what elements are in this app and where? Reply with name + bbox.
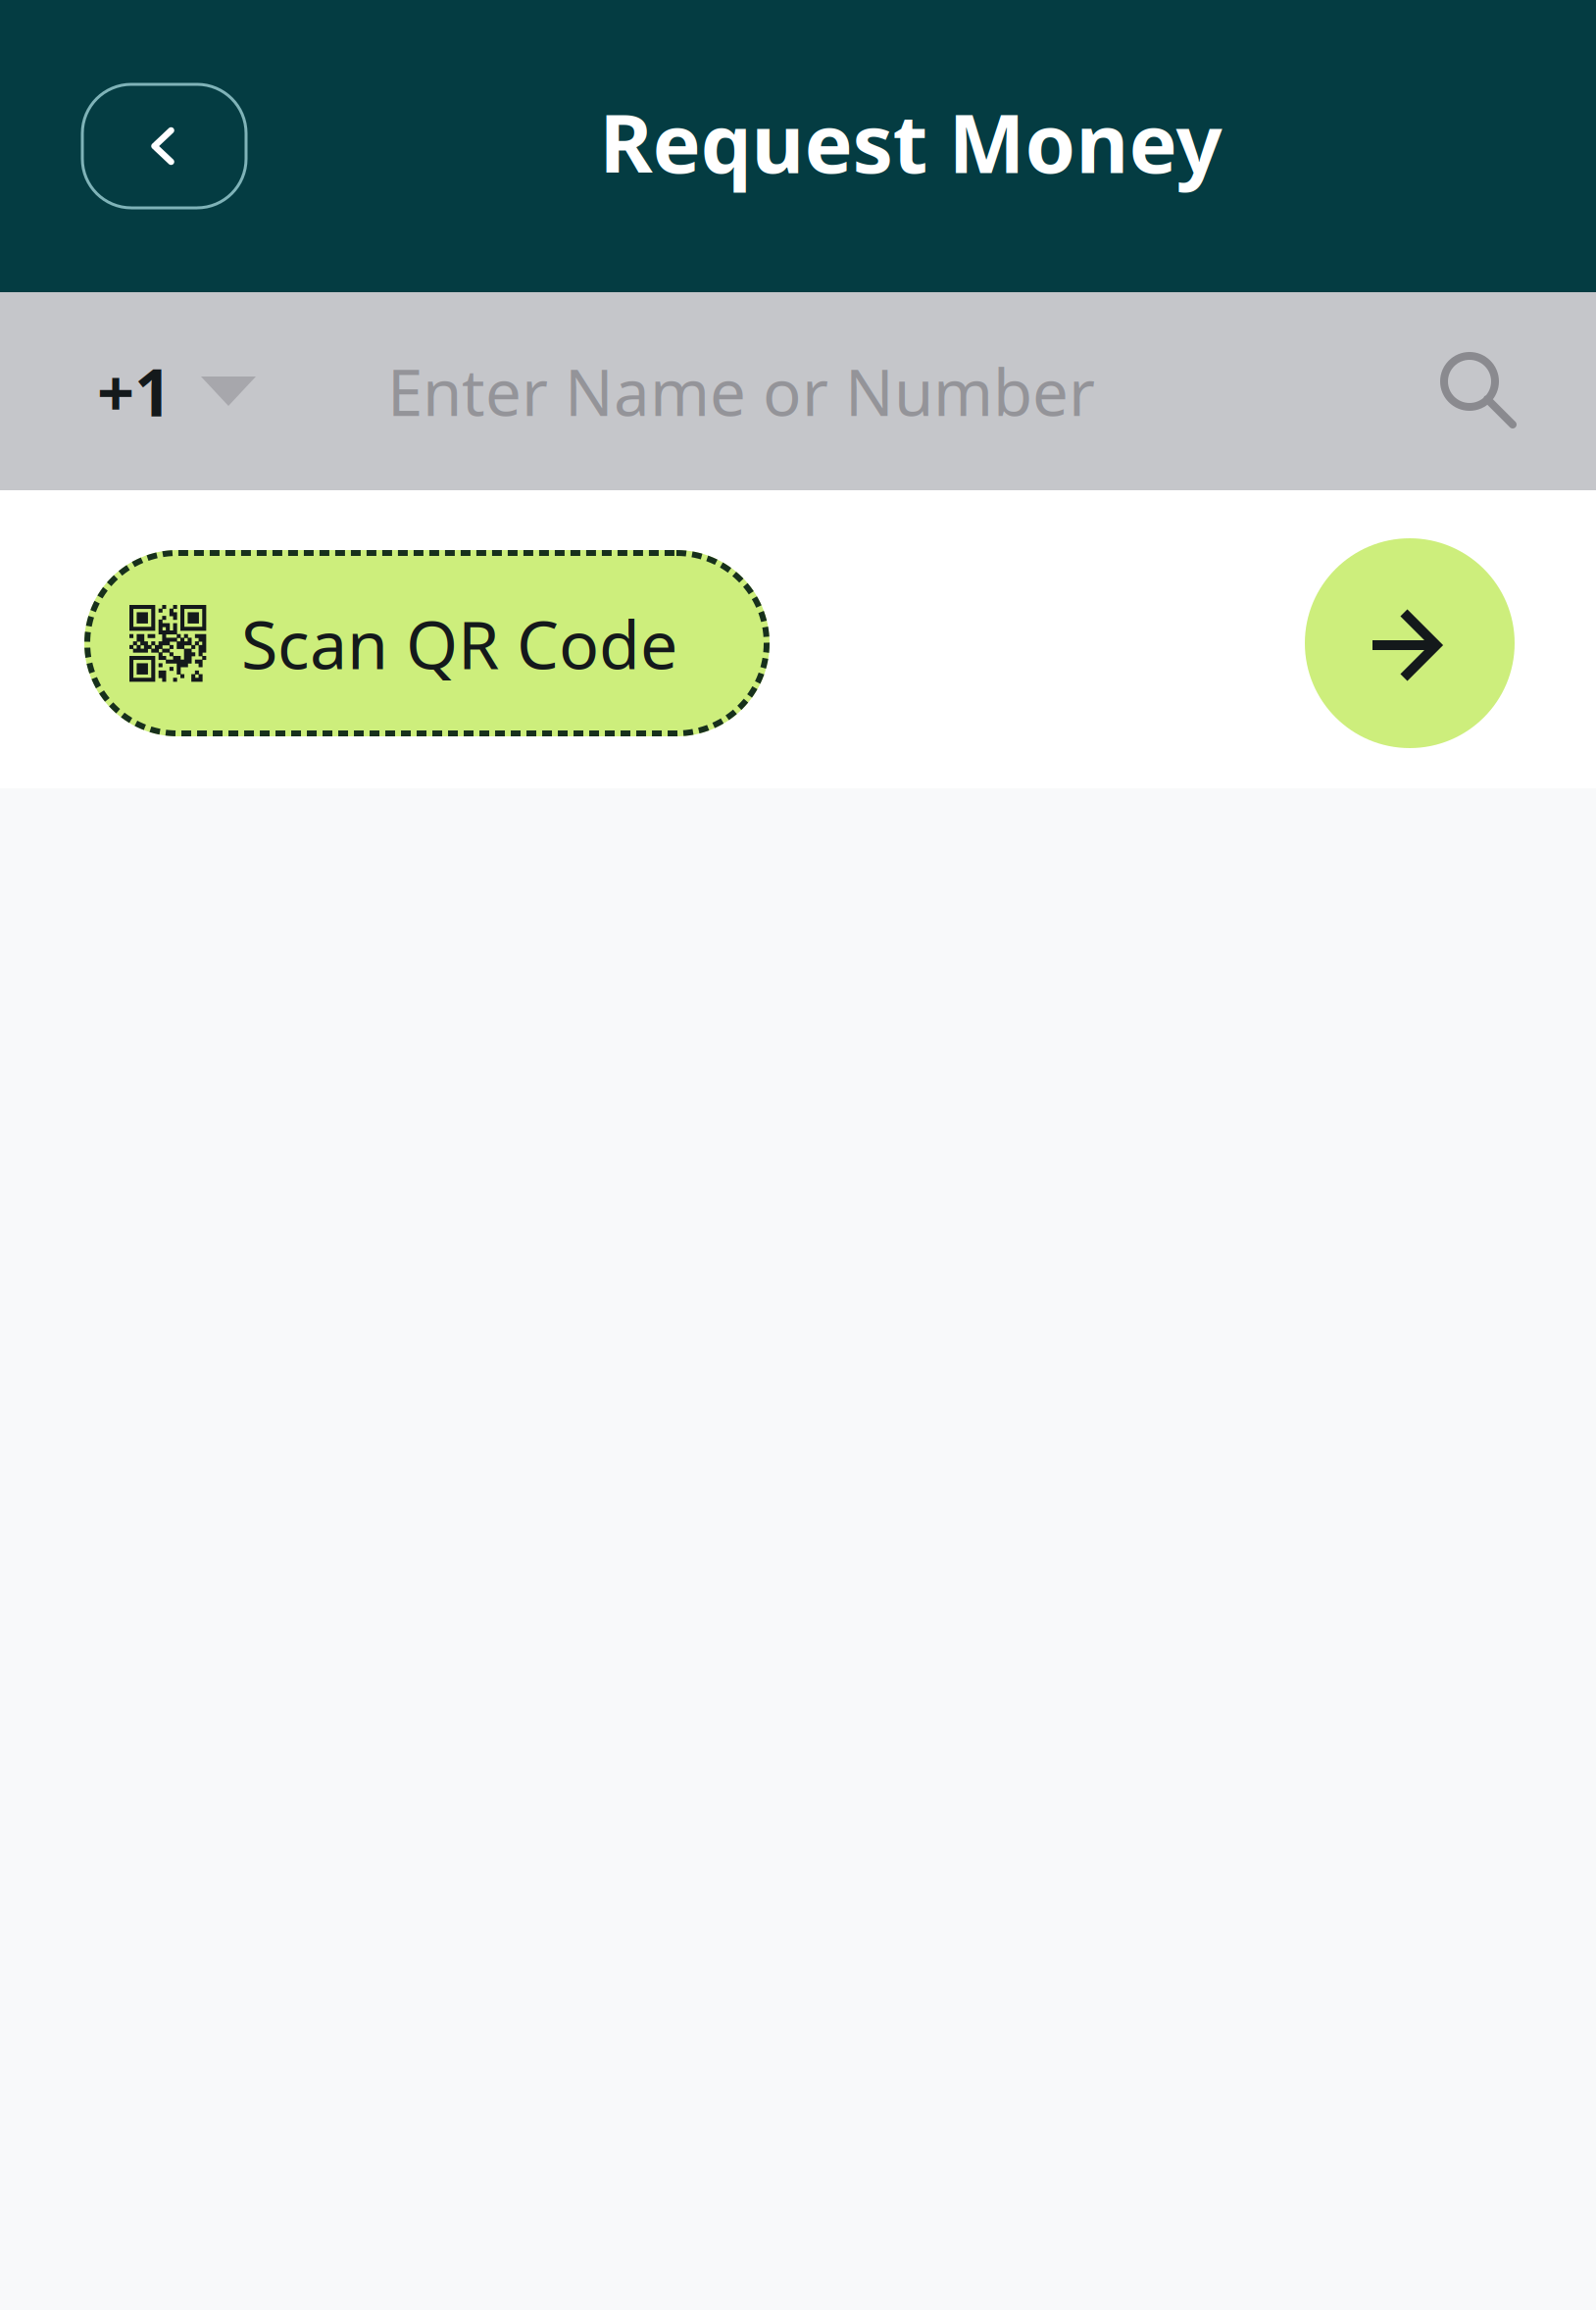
staticText: Enter Name or Number: [387, 349, 1095, 434]
button[interactable]: Enter Name or Number: [275, 292, 1363, 490]
button[interactable]: Back: [82, 84, 246, 208]
staticText: Request Money: [599, 88, 1222, 196]
button[interactable]: Continue: [1305, 538, 1515, 748]
button[interactable]: Search: [1363, 292, 1596, 490]
staticText: Scan QR Code: [241, 599, 677, 687]
staticText: +1: [97, 348, 172, 435]
button[interactable]: +1: [0, 292, 275, 490]
button[interactable]: Scan QR Code: [84, 550, 770, 736]
